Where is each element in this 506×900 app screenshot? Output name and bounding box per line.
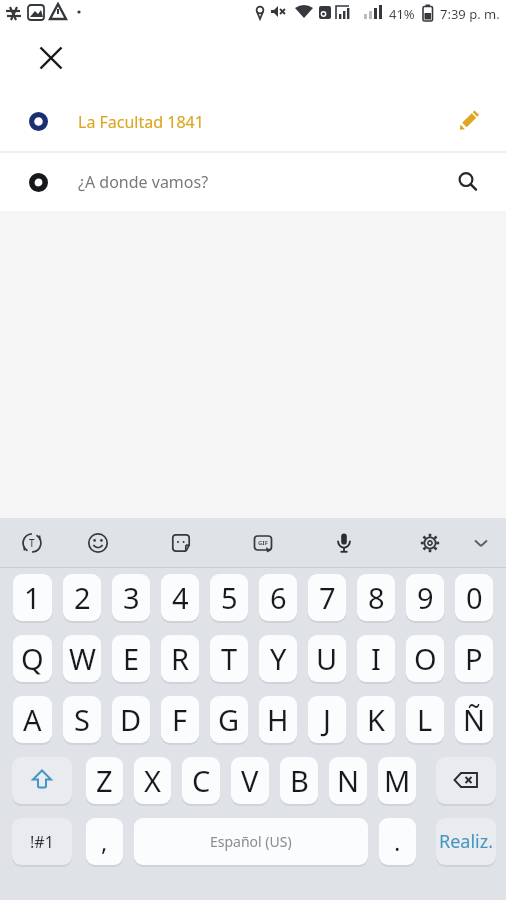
button[interactable]: ¿A donde vamos? [0,153,506,211]
button[interactable]: O [406,635,444,682]
button[interactable]: Z [86,757,123,804]
staticText: La Facultad 1841 [78,111,204,133]
button[interactable]: H [259,696,297,743]
staticText: !#1 [30,831,54,853]
button[interactable]: . [379,818,416,865]
button[interactable]: W [63,635,101,682]
button[interactable]: N [329,757,367,804]
button[interactable]: 0 [455,574,493,621]
button[interactable] [36,43,66,73]
staticText: R [171,639,190,678]
button[interactable]: V [231,757,269,804]
staticText: 9 [417,578,434,617]
button[interactable]: 5 [210,574,248,621]
staticText: F [172,700,188,739]
button[interactable]: Y [259,635,297,682]
button[interactable]: S [63,696,101,743]
staticText: M [384,761,411,800]
button[interactable]: X [134,757,171,804]
button[interactable]: Español (US) [134,818,368,865]
button[interactable]: T [20,531,44,555]
button[interactable]: G [210,696,248,743]
button[interactable]: , [86,818,123,865]
button[interactable] [12,757,72,804]
staticText: X [144,761,161,800]
staticText: N [337,761,360,800]
staticText: 7 [319,578,336,617]
staticText: E [123,639,140,678]
staticText: C [192,761,211,800]
button[interactable]: La Facultad 1841 [0,92,506,151]
button[interactable]: E [112,635,150,682]
staticText: 5 [221,578,238,617]
staticText: . [394,825,401,858]
button[interactable]: A [13,696,52,743]
button[interactable]: 9 [406,574,444,621]
staticText: GIF [258,539,268,547]
button[interactable]: 3 [112,574,150,621]
button[interactable]: !#1 [12,818,72,865]
button[interactable] [418,531,442,555]
button[interactable]: 6 [259,574,297,621]
staticText: T [29,536,35,550]
staticText: 1 [24,578,41,617]
button[interactable] [436,757,496,804]
button[interactable]: 2 [63,574,101,621]
button[interactable]: U [308,635,346,682]
staticText: L [417,700,433,739]
button[interactable]: R [161,635,199,682]
staticText: H [267,700,289,739]
staticText: K [367,700,385,739]
button[interactable]: 1 [13,574,52,621]
staticText: Q [21,639,44,678]
staticText: 2 [74,578,91,617]
button[interactable]: K [357,696,395,743]
staticText: S [74,700,90,739]
staticText: 7:39 p. m. [440,5,500,23]
staticText: I [371,639,381,678]
staticText: 8 [368,578,385,617]
staticText: 4 [172,578,189,617]
button[interactable]: Realiz. [436,818,496,865]
button[interactable]: I [357,635,395,682]
staticText: 41% [389,5,415,23]
button[interactable]: D [112,696,150,743]
button[interactable] [169,531,193,555]
button[interactable]: L [406,696,444,743]
button[interactable]: M [378,757,416,804]
button[interactable]: 7 [308,574,346,621]
button[interactable] [86,531,110,555]
button[interactable]: P [455,635,493,682]
staticText: Y [270,639,287,678]
button[interactable]: J [308,696,346,743]
button[interactable]: Ñ [455,696,493,743]
staticText: W [69,639,96,678]
staticText: J [323,700,331,739]
button[interactable]: T [210,635,248,682]
button[interactable]: Q [13,635,52,682]
button[interactable]: 4 [161,574,199,621]
staticText: B [290,761,309,800]
staticText: O [414,639,437,678]
staticText: A [23,700,42,739]
button[interactable]: GIF [251,531,275,555]
button[interactable]: B [280,757,318,804]
staticText: G [218,700,240,739]
button[interactable] [455,110,479,134]
button[interactable]: C [182,757,220,804]
staticText: Ñ [463,700,486,739]
staticText: P [465,639,483,678]
staticText: 6 [270,578,287,617]
staticText: V [241,761,259,800]
staticText: , [101,825,108,858]
staticText: 0 [466,578,483,617]
staticText: Realiz. [439,829,494,854]
button[interactable] [332,531,356,555]
staticText: ¿A donde vamos? [78,171,209,193]
button[interactable]: 8 [357,574,395,621]
staticText: Español (US) [210,832,292,851]
button[interactable] [469,531,493,555]
button[interactable] [456,170,480,194]
staticText: T [221,639,238,678]
button[interactable]: F [161,696,199,743]
